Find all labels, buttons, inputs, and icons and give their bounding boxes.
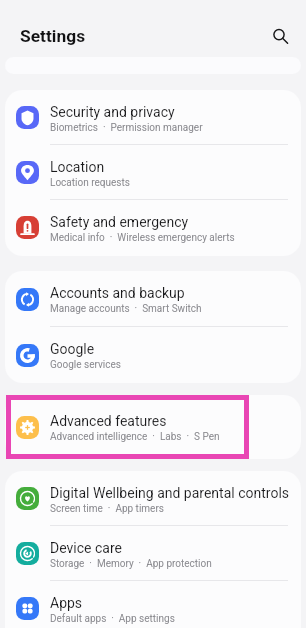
staticText: Advanced intelligence · Labs · S Pen [50,431,220,443]
staticText: Advanced features [50,413,167,429]
staticText: Manage accounts · Smart Switch [50,303,202,315]
staticText: Safety and emergency [50,214,189,230]
staticText: Location [50,159,105,175]
staticText: Security and privacy [50,104,175,120]
staticText: Settings [20,26,86,46]
button[interactable]: Device care [5,526,301,581]
staticText: Google [50,341,95,357]
button[interactable]: Security and privacy [5,90,301,145]
button[interactable]: Safety and emergency [5,200,301,255]
staticText: Biometrics · Permission manager [50,122,203,134]
button[interactable]: Location [5,145,301,200]
staticText: Google services [50,359,121,371]
button[interactable]: Advanced features [5,395,301,459]
staticText: Screen time · App timers [50,503,164,515]
button[interactable]: Search [265,21,293,49]
staticText: Apps [50,595,83,611]
staticText: Medical info · Wireless emergency alerts [50,232,235,244]
staticText: Accounts and backup [50,285,185,301]
button[interactable]: Accounts and backup [5,271,301,327]
staticText: Location requests [50,177,130,189]
staticText: Storage · Memory · App protection [50,558,212,570]
staticText: Device care [50,540,122,556]
button[interactable]: Apps [5,581,301,628]
button[interactable]: Google [5,327,301,383]
staticText: Default apps · App settings [50,613,175,625]
staticText: Digital Wellbeing and parental controls [50,485,290,501]
button[interactable]: Digital Wellbeing and parental controls [5,471,301,526]
